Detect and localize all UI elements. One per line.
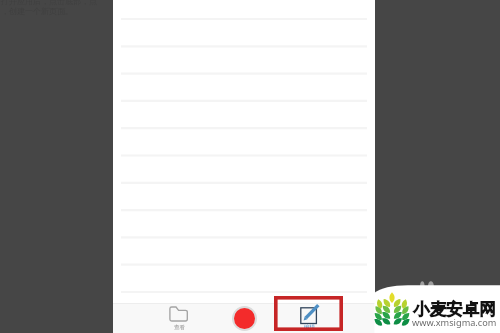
button[interactable]: 查看	[147, 303, 211, 333]
staticText: 小麦安卓网	[413, 299, 496, 320]
staticText: 编辑	[304, 324, 315, 331]
staticText: 查看	[174, 324, 185, 331]
staticText: www.xmsigma.com	[412, 316, 497, 329]
button[interactable]: Record	[212, 303, 276, 333]
button[interactable]: 编辑	[277, 303, 341, 333]
